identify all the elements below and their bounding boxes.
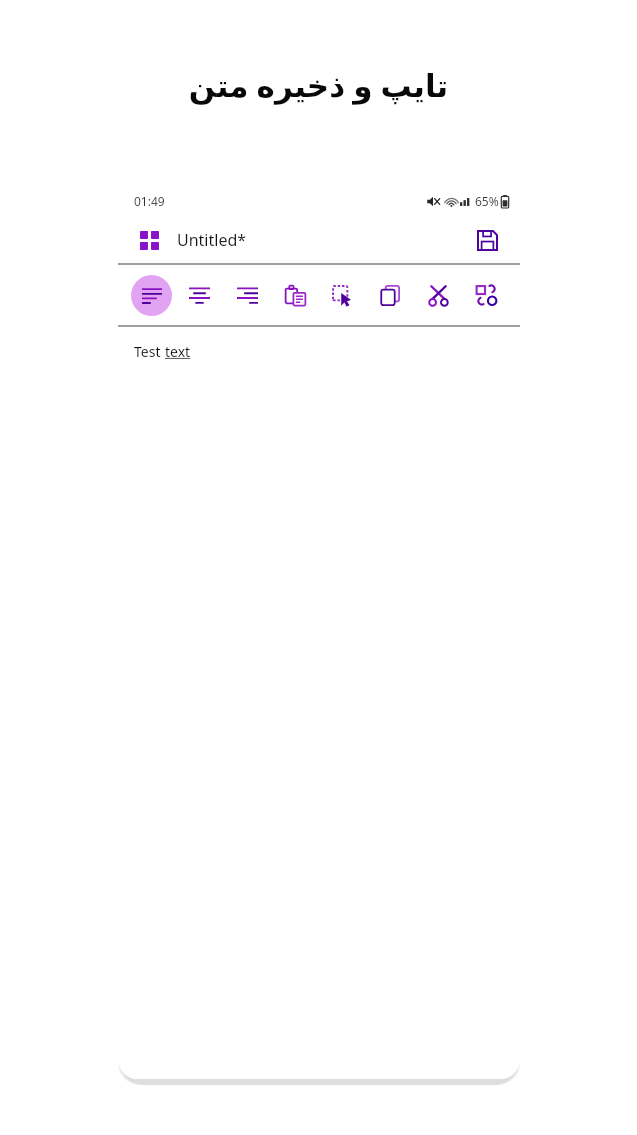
staticText: Untitled* [177,229,247,251]
button[interactable]: Align right [227,275,268,316]
staticText: Test [134,342,165,361]
button[interactable]: Undo and redo [466,275,507,316]
staticText: text [165,342,191,361]
button[interactable]: Save [467,220,507,260]
button[interactable]: Select all [322,275,363,316]
button[interactable]: Align center [179,275,220,316]
button[interactable]: Test [118,327,520,1079]
staticText: 01:49 [134,193,165,209]
button[interactable]: Align left [131,275,172,316]
button[interactable]: Copy [370,275,411,316]
button[interactable]: Cut [418,275,459,316]
staticText: 65% [475,193,499,209]
button[interactable]: Apps menu [131,222,167,258]
staticText: تایپ و ذخیره متن [0,64,637,106]
button[interactable]: Paste [275,275,316,316]
